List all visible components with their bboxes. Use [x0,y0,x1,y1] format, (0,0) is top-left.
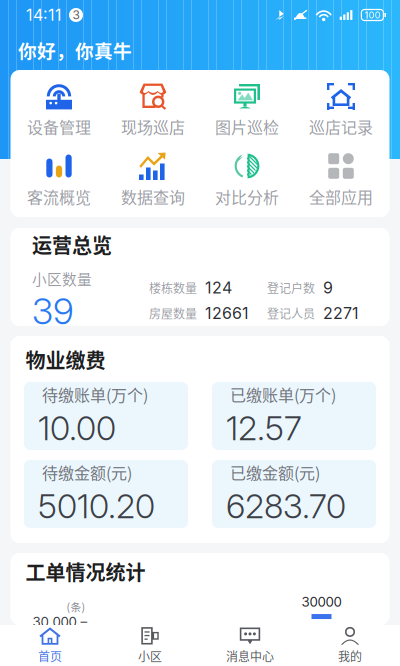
staticText: 12.57 [226,408,302,448]
staticText: (条) [66,599,85,614]
staticText: 100 [364,9,380,21]
staticText: 数据查询 [121,185,185,208]
staticText: 30,000 – [32,614,87,630]
button[interactable]: 对比分析 [200,150,294,210]
button[interactable]: 设备管理 [12,80,106,140]
staticText: 已缴金额(元) [230,461,320,484]
staticText: 楼栋数量 [149,279,197,296]
staticText: 登记户数 [267,279,315,296]
staticText: 12661 [205,303,249,323]
staticText: 5010.20 [38,486,155,526]
staticText: 2271 [323,303,359,323]
button[interactable]: 全部应用 [294,150,388,210]
staticText: 待缴账单(万个) [42,383,148,406]
staticText: 设备管理 [27,115,91,138]
staticText: 已缴账单(万个) [230,383,336,406]
button[interactable]: 客流概览 [12,150,106,210]
staticText: 现场巡店 [121,115,185,138]
staticText: 全部应用 [309,185,373,208]
staticText: 小区 [138,647,162,665]
staticText: 巡店记录 [309,115,373,138]
staticText: 工单情况统计 [25,557,145,586]
staticText: 小区数量 [32,268,92,289]
staticText: 运营总览 [32,230,112,259]
staticText: 3 [72,8,79,22]
button[interactable]: 图片巡检 [200,80,294,140]
staticText: 图片巡检 [215,115,279,138]
staticText: 30000 [301,594,341,610]
button[interactable]: 首页 [0,625,100,666]
button[interactable]: 小区 [100,625,200,666]
staticText: 124 [205,278,232,297]
button[interactable]: 我的 [300,625,400,666]
staticText: 39 [32,289,74,333]
staticText: 客流概览 [27,185,91,208]
staticText: 6283.70 [226,486,346,526]
staticText: 我的 [338,647,362,665]
staticText: 物业缴费 [25,345,105,374]
staticText: 14:11 [26,5,62,25]
button[interactable]: 现场巡店 [106,80,200,140]
staticText: 你好，你真牛 [18,36,132,63]
button[interactable]: 巡店记录 [294,80,388,140]
staticText: 9 [323,278,333,297]
staticText: 首页 [38,647,62,665]
staticText: 待缴金额(元) [42,461,132,484]
staticText: 消息中心 [226,647,274,665]
button[interactable]: 消息中心 [200,625,300,666]
staticText: 对比分析 [215,185,279,208]
staticText: 房屋数量 [149,304,197,322]
staticText: 登记人员 [267,304,315,322]
staticText: 10.00 [38,408,116,448]
button[interactable]: 数据查询 [106,150,200,210]
